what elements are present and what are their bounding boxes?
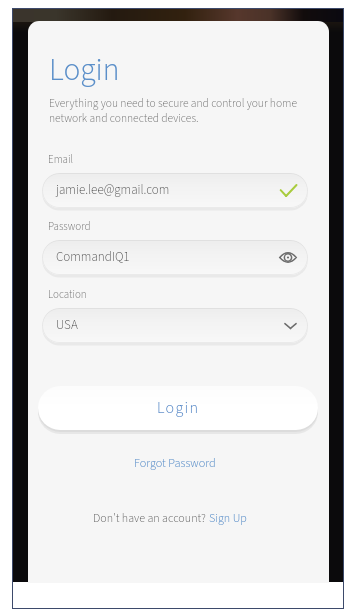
staticText: Location	[48, 287, 87, 303]
button[interactable]: CommandIQ1	[42, 240, 308, 275]
button[interactable]: Forgot Password	[124, 450, 226, 477]
staticText: Everything you need to secure and contro…	[49, 95, 307, 126]
staticText: CommandIQ1	[56, 248, 130, 267]
staticText: Password	[48, 219, 91, 235]
button[interactable]: Login	[38, 386, 318, 430]
other: Select location	[284, 322, 297, 330]
staticText: Email	[48, 152, 74, 168]
staticText: Login	[157, 397, 200, 420]
button[interactable]: USA	[42, 308, 308, 343]
other: Show password	[279, 252, 297, 263]
staticText: jamie.lee@gmail.com	[56, 181, 170, 200]
button[interactable]: jamie.lee@gmail.com	[42, 173, 308, 208]
staticText: USA	[56, 316, 78, 335]
button[interactable]: Sign Up	[209, 510, 247, 527]
staticText: Login	[49, 48, 120, 93]
staticText: Don't have an account?	[93, 510, 209, 527]
